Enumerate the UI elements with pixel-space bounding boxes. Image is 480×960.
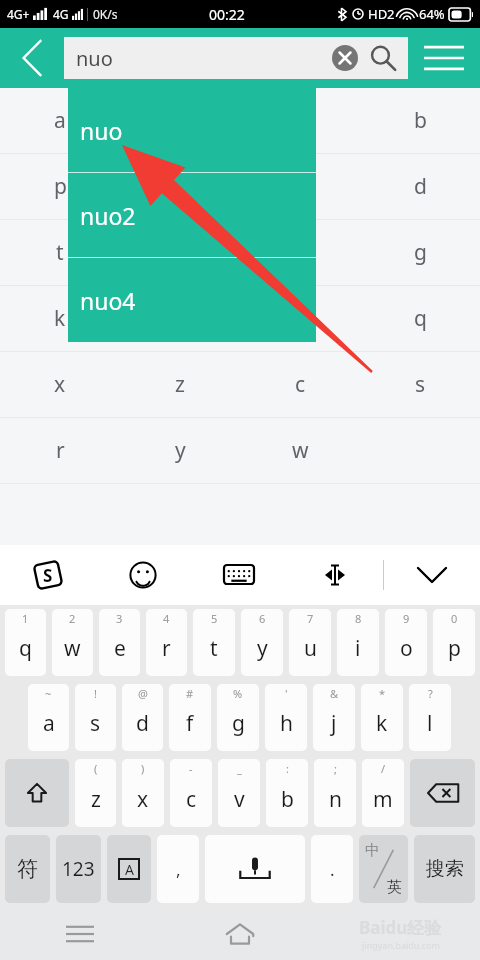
staticText: d <box>414 172 427 201</box>
button[interactable]: 1 <box>5 609 46 676</box>
button[interactable]: a <box>0 88 480 153</box>
button[interactable]: nuo <box>64 37 408 79</box>
staticText: 中 <box>365 841 380 860</box>
staticText: q <box>414 304 427 333</box>
staticText: # <box>186 686 194 701</box>
button[interactable]: * <box>361 684 403 751</box>
button[interactable]: Keyboard layout <box>191 545 287 605</box>
staticText: - <box>189 761 193 776</box>
staticText: r <box>162 634 171 663</box>
button[interactable]: t <box>0 220 480 285</box>
button[interactable]: 搜索 <box>414 835 475 903</box>
button[interactable]: 5 <box>193 609 235 676</box>
button[interactable]: 123 <box>56 835 101 903</box>
staticText: f <box>296 172 304 201</box>
button[interactable]: Search <box>364 39 402 77</box>
button[interactable]: _ <box>218 759 260 827</box>
button[interactable]: r <box>0 418 480 483</box>
button[interactable]: 4 <box>146 609 187 676</box>
staticText: m <box>373 785 393 814</box>
button[interactable]: ? <box>409 684 451 751</box>
button[interactable]: 符 <box>5 835 50 903</box>
button[interactable]: Clear <box>328 41 362 75</box>
staticText: g <box>232 709 245 738</box>
staticText: b <box>281 785 294 814</box>
button[interactable]: Space, voice input <box>205 835 305 903</box>
button[interactable]: : <box>266 759 308 827</box>
button[interactable]: Shift <box>5 759 69 827</box>
staticText: k <box>54 304 66 333</box>
button[interactable]: % <box>217 684 259 751</box>
button[interactable]: nuo2 <box>68 173 316 257</box>
button[interactable]: k <box>0 286 480 351</box>
staticText: ' <box>285 686 288 701</box>
staticText: x <box>54 370 66 399</box>
staticText: p <box>448 634 461 663</box>
button[interactable]: Move cursor <box>287 545 383 605</box>
staticText: c <box>186 785 197 814</box>
button[interactable]: 8 <box>337 609 379 676</box>
button[interactable]: x <box>0 352 480 417</box>
staticText: o <box>400 634 413 663</box>
button[interactable]: Emoji <box>95 545 191 605</box>
button[interactable]: nuo4 <box>68 258 316 342</box>
staticText: g <box>414 238 427 267</box>
staticText: ; <box>334 761 337 776</box>
button[interactable]: 2 <box>52 609 93 676</box>
button[interactable]: / <box>362 759 404 827</box>
staticText: t <box>56 238 64 267</box>
button[interactable]: ~ <box>28 684 69 751</box>
staticText: , <box>176 858 181 881</box>
button[interactable]: nuo <box>68 88 316 172</box>
staticText: nuo4 <box>80 285 136 316</box>
button[interactable]: 6 <box>241 609 283 676</box>
button[interactable]: Back <box>0 28 64 88</box>
staticText: 4 <box>163 611 170 626</box>
button[interactable]: Sogou input <box>0 545 95 605</box>
staticText: nuo <box>80 115 123 146</box>
staticText: 搜索 <box>426 857 464 881</box>
button[interactable]: ( <box>75 759 116 827</box>
staticText: jingyan.baidu.com <box>362 939 440 951</box>
staticText: 8 <box>355 611 362 626</box>
staticText: p <box>54 172 67 201</box>
button[interactable]: - <box>170 759 212 827</box>
staticText: s <box>90 709 101 738</box>
button[interactable]: @ <box>122 684 163 751</box>
button[interactable]: & <box>313 684 355 751</box>
button[interactable]: 9 <box>385 609 427 676</box>
button[interactable]: Chinese English toggle <box>359 835 408 903</box>
button[interactable]: , <box>157 835 199 903</box>
staticText: x <box>137 785 149 814</box>
staticText: u <box>304 634 317 663</box>
button[interactable]: p <box>0 154 480 219</box>
staticText: ? <box>428 686 433 701</box>
button[interactable]: Hide keyboard <box>384 545 480 605</box>
staticText: % <box>233 686 243 701</box>
button[interactable]: . <box>311 835 353 903</box>
button[interactable]: 0 <box>433 609 475 676</box>
staticText: z <box>91 785 101 814</box>
staticText: c <box>295 370 306 399</box>
button[interactable]: # <box>169 684 211 751</box>
staticText: nuo2 <box>80 200 136 231</box>
button[interactable]: ; <box>314 759 356 827</box>
button[interactable]: Recent apps <box>0 907 160 960</box>
staticText: 0K/s <box>93 6 118 22</box>
button[interactable]: 3 <box>99 609 140 676</box>
button[interactable]: ' <box>265 684 307 751</box>
staticText: 5 <box>211 611 218 626</box>
button[interactable]: Capitalization <box>107 835 151 903</box>
staticText: l <box>427 709 433 738</box>
staticText: 7 <box>307 611 314 626</box>
button[interactable]: Home <box>160 907 320 960</box>
button[interactable]: ) <box>122 759 164 827</box>
button[interactable]: Menu <box>408 28 480 88</box>
staticText: _ <box>237 761 242 776</box>
button[interactable]: 7 <box>289 609 331 676</box>
button[interactable]: Backspace <box>410 759 475 827</box>
button[interactable]: ! <box>75 684 116 751</box>
staticText: 9 <box>403 611 410 626</box>
